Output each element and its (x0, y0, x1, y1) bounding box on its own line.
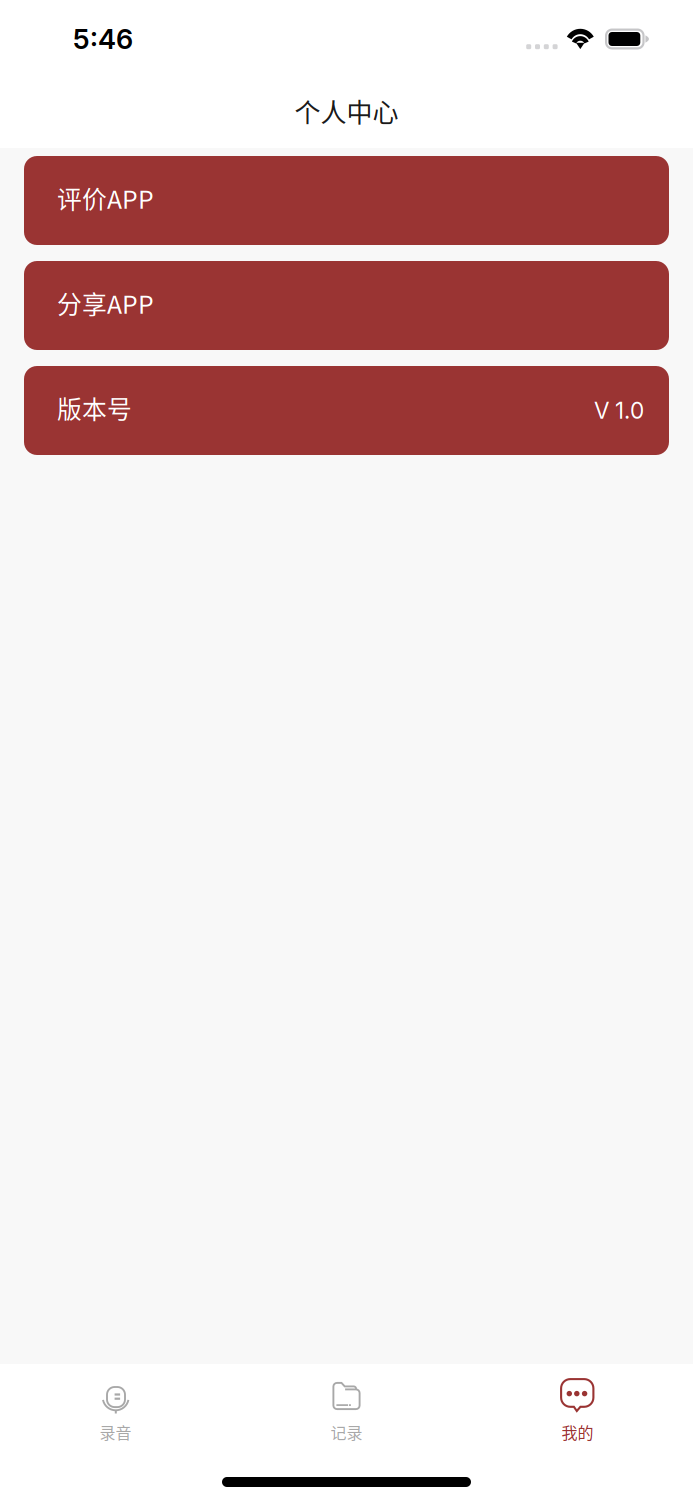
button[interactable]: 录音 (0, 1364, 231, 1453)
staticText: 录音 (99, 1420, 131, 1444)
staticText: 5:46 (73, 22, 133, 56)
button[interactable]: 记录 (231, 1364, 462, 1453)
staticText: 版本号 (57, 390, 132, 426)
button[interactable]: 评价APP (24, 156, 669, 245)
staticText: 我的 (561, 1420, 593, 1444)
staticText: 记录 (330, 1420, 362, 1444)
button[interactable]: 版本号 (24, 366, 669, 455)
button[interactable]: 我的 (462, 1364, 693, 1453)
staticText: 评价APP (57, 180, 154, 216)
staticText: V 1.0 (594, 397, 644, 424)
button[interactable]: 分享APP (24, 261, 669, 350)
staticText: 个人中心 (294, 92, 398, 130)
staticText: 分享APP (57, 285, 154, 321)
